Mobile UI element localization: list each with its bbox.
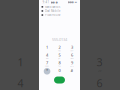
staticText: # [70,68,73,73]
button[interactable]: 6 [66,52,78,59]
staticText: 6 [96,76,102,90]
staticText: 8 [58,60,60,65]
staticText: 2 [58,45,60,50]
button[interactable]: # [66,68,78,75]
button[interactable]: 3 [66,45,78,52]
staticText: Dad Mobile [45,9,61,13]
staticText: 6 [71,52,73,58]
staticText: DEF [70,50,73,52]
staticText: Maria Santos [45,5,60,9]
staticText: GHI [46,58,48,59]
button[interactable]: Call [52,76,67,83]
staticText: 1 [46,45,48,50]
staticText: 7 [46,60,48,65]
staticText: MNO [70,58,73,59]
staticText: 9:41 ●● ● [43,0,58,4]
staticText: 5 [58,52,60,58]
staticText: WXYZ [70,65,74,67]
staticText: * [46,68,48,73]
staticText: 1 [17,55,23,69]
button[interactable]: 1 [41,45,53,52]
staticText: 3 [71,45,73,50]
staticText: 4 [17,76,23,90]
button[interactable]: 8 [53,60,66,67]
button[interactable]: 7 [41,60,53,67]
staticText: 555-0134 [52,37,67,42]
staticText: Pizza House [45,13,61,17]
button[interactable]: 4 [41,52,53,59]
staticText: 3 [96,55,102,69]
staticText: 4 [46,52,48,58]
button[interactable]: 2 [53,45,66,52]
button[interactable]: 5 [53,52,66,59]
staticText: TUV [58,65,61,67]
button[interactable]: 0 [53,68,66,75]
staticText: ●●● ▬ [68,1,78,4]
staticText: ABC [58,50,61,52]
staticText: JKL [58,58,60,59]
button[interactable]: Pizza House [39,13,80,17]
button[interactable]: 9 [66,60,78,67]
button[interactable]: * [41,68,53,75]
staticText: 9 [71,60,73,65]
staticText: 0 [58,68,60,73]
button[interactable]: Dad Mobile [39,9,80,13]
staticText: PQRS [45,65,49,67]
button[interactable]: Maria Santos [39,5,80,9]
